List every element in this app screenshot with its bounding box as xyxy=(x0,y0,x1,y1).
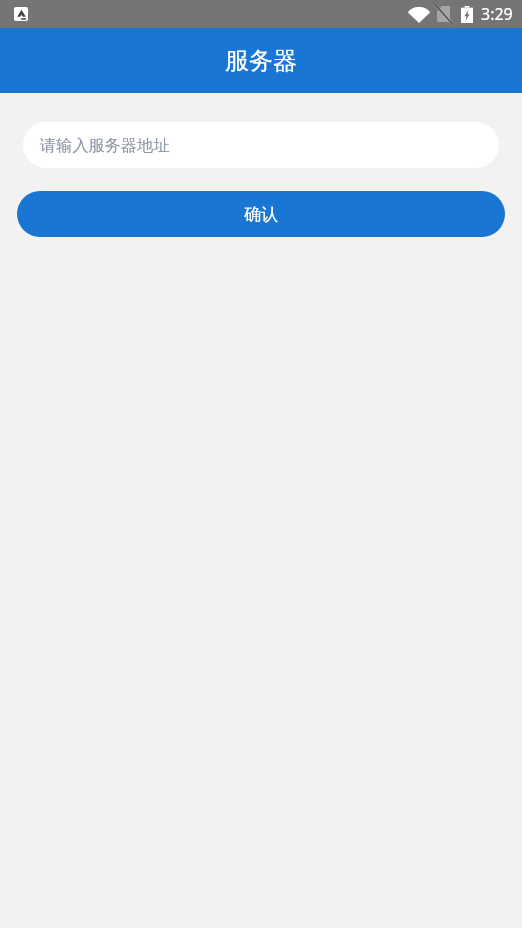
other: No SIM card xyxy=(437,6,450,22)
other: Wi-Fi xyxy=(408,5,430,23)
button[interactable]: 请输入服务器地址 xyxy=(23,122,499,168)
staticText: 3:29 xyxy=(481,3,513,25)
button[interactable]: 确认 xyxy=(17,191,505,237)
other: App notification xyxy=(14,7,28,21)
staticText: 确认 xyxy=(244,204,278,225)
other: Battery charging xyxy=(461,6,473,23)
staticText: 请输入服务器地址 xyxy=(40,135,170,155)
staticText: 服务器 xyxy=(225,46,297,76)
